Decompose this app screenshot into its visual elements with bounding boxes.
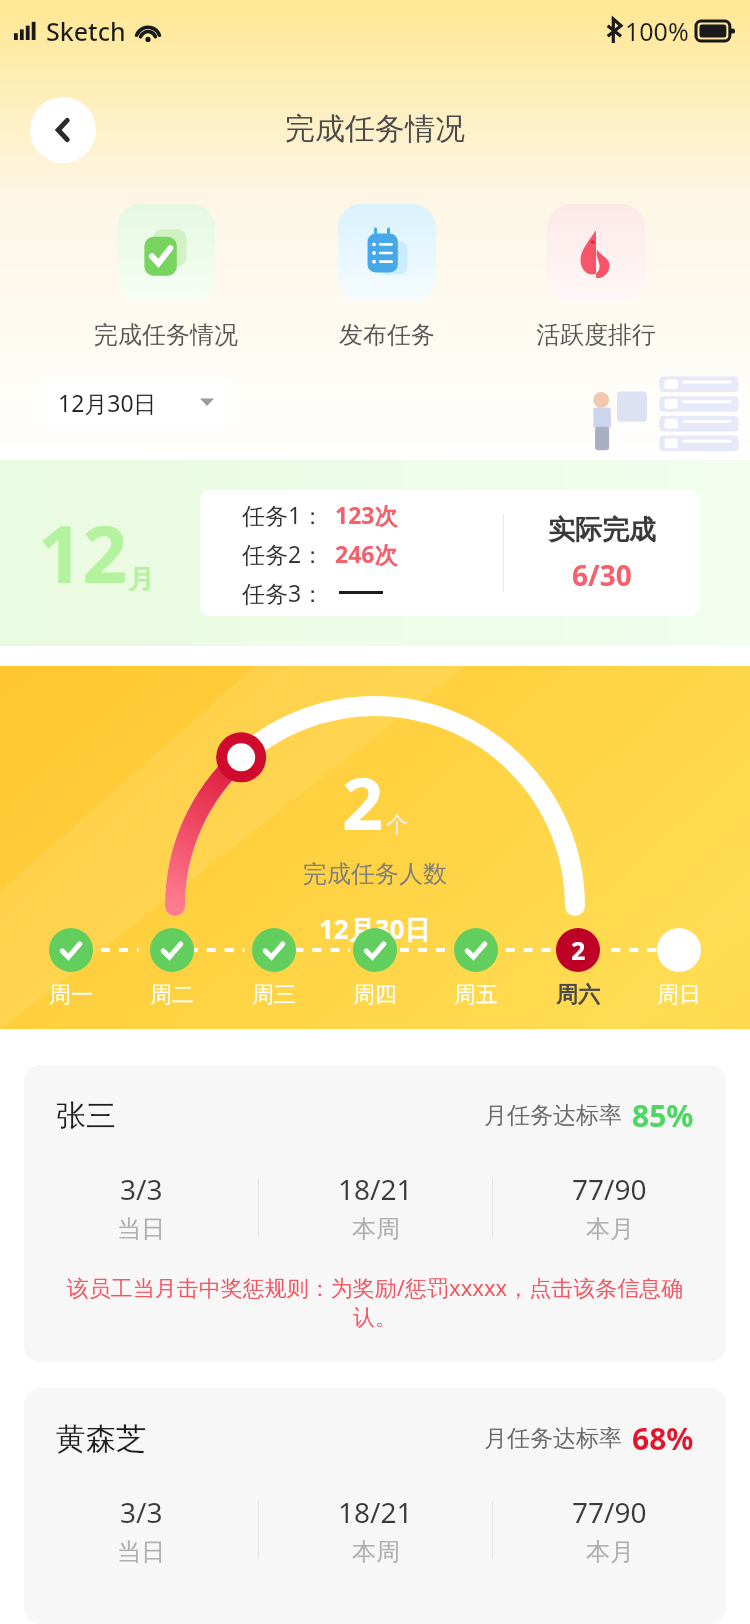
button[interactable]: 周四 bbox=[344, 928, 406, 1009]
button[interactable]: 周二 bbox=[141, 928, 203, 1009]
staticText: 本月 bbox=[586, 1214, 634, 1244]
staticText: 本周 bbox=[352, 1537, 400, 1567]
staticText: 任务2： bbox=[242, 538, 325, 569]
button[interactable]: 发布任务 bbox=[332, 204, 442, 350]
button[interactable]: 活跃度排行 bbox=[530, 204, 662, 350]
staticText: 当日 bbox=[117, 1537, 165, 1567]
button[interactable]: 黄森芝 bbox=[24, 1388, 726, 1624]
staticText: 个 bbox=[386, 811, 408, 839]
staticText: Sketch bbox=[46, 14, 126, 48]
staticText: 2 bbox=[342, 753, 384, 851]
staticText: 周日 bbox=[657, 981, 701, 1009]
button[interactable]: 12月30日 bbox=[40, 378, 232, 426]
staticText: 2 bbox=[571, 933, 586, 967]
button[interactable]: 2 bbox=[547, 928, 609, 1009]
button[interactable]: 任务1： bbox=[200, 490, 700, 616]
staticText: 当日 bbox=[117, 1214, 165, 1244]
staticText: 任务1： bbox=[242, 499, 325, 530]
staticText: 68% bbox=[632, 1418, 694, 1459]
staticText: 周五 bbox=[454, 981, 498, 1009]
staticText: 18/21 bbox=[338, 1493, 413, 1531]
button[interactable]: Back bbox=[30, 97, 96, 163]
button[interactable]: 周一 bbox=[40, 928, 102, 1009]
staticText: 本周 bbox=[352, 1214, 400, 1244]
staticText: 活跃度排行 bbox=[536, 320, 656, 350]
staticText: 张三 bbox=[56, 1097, 116, 1135]
button[interactable]: 张三 bbox=[24, 1065, 726, 1362]
staticText: 完成任务情况 bbox=[0, 110, 750, 148]
staticText: 77/90 bbox=[572, 1493, 647, 1531]
staticText: 实际完成 bbox=[548, 513, 656, 547]
staticText: 12 bbox=[38, 500, 128, 606]
staticText: 完成任务情况 bbox=[94, 320, 238, 350]
staticText: 12月30日 bbox=[58, 387, 157, 418]
staticText: 月 bbox=[128, 563, 154, 596]
staticText: 月任务达标率 bbox=[484, 1424, 622, 1453]
staticText: 本月 bbox=[586, 1537, 634, 1567]
button[interactable]: 周日 bbox=[648, 928, 710, 1009]
staticText: 246次 bbox=[335, 538, 398, 569]
staticText: 任务3： bbox=[242, 577, 325, 608]
staticText: 6/30 bbox=[572, 556, 632, 594]
staticText: 3/3 bbox=[120, 1493, 163, 1531]
staticText: 周三 bbox=[252, 981, 296, 1009]
staticText: 12月30日 bbox=[319, 911, 431, 947]
staticText: 该员工当月击中奖惩规则：为奖励/惩罚xxxxx，点击该条信息确认。 bbox=[46, 1272, 704, 1332]
staticText: 周四 bbox=[353, 981, 397, 1009]
button[interactable]: 周五 bbox=[445, 928, 507, 1009]
staticText: 发布任务 bbox=[339, 320, 435, 350]
staticText: 周六 bbox=[556, 981, 600, 1009]
button[interactable]: 完成任务情况 bbox=[88, 204, 244, 350]
staticText: 18/21 bbox=[338, 1170, 413, 1208]
staticText: 黄森芝 bbox=[56, 1420, 146, 1458]
staticText: 3/3 bbox=[120, 1170, 163, 1208]
staticText: 123次 bbox=[335, 499, 398, 530]
staticText: 85% bbox=[632, 1095, 694, 1136]
staticText: 100% bbox=[625, 14, 689, 48]
staticText: 月任务达标率 bbox=[484, 1101, 622, 1130]
staticText: 周二 bbox=[150, 981, 194, 1009]
staticText: 周一 bbox=[49, 981, 93, 1009]
staticText: 完成任务人数 bbox=[303, 859, 447, 889]
staticText: 77/90 bbox=[572, 1170, 647, 1208]
button[interactable]: 周三 bbox=[243, 928, 305, 1009]
